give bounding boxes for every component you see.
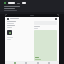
button[interactable]: Status — [0, 0, 64, 12]
button[interactable]: Thumbnail — [7, 30, 12, 35]
button[interactable]: Action — [22, 2, 26, 4]
button[interactable]: Menu — [5, 14, 59, 64]
button[interactable]: Photo tile — [34, 30, 57, 61]
